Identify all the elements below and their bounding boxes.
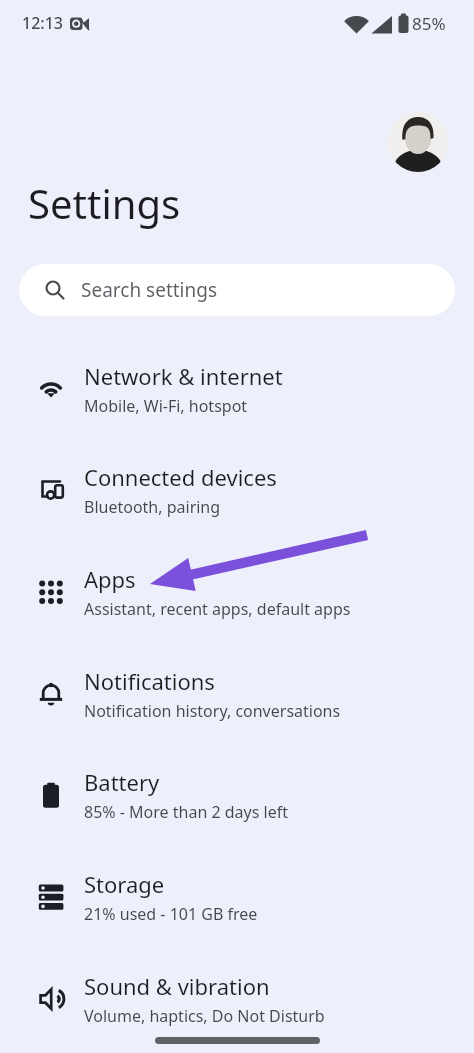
button[interactable]: Apps (0, 541, 474, 643)
staticText: Network & internet (84, 361, 283, 391)
staticText: Sound & vibration (84, 971, 270, 1001)
staticText: Bluetooth, pairing (84, 496, 221, 518)
button[interactable]: Search settings (19, 264, 455, 316)
staticText: Volume, haptics, Do Not Disturb (84, 1005, 325, 1027)
button[interactable]: Sound & vibration (0, 948, 474, 1050)
staticText: Notification history, conversations (84, 700, 341, 722)
button[interactable]: Notifications (0, 643, 474, 745)
staticText: 85% (412, 12, 446, 35)
staticText: Mobile, Wi-Fi, hotspot (84, 395, 248, 417)
button[interactable] (388, 112, 448, 172)
staticText: Battery (84, 767, 160, 797)
button[interactable]: Network & internet (0, 338, 474, 440)
staticText: 21% used - 101 GB free (84, 903, 258, 925)
staticText: 85% - More than 2 days left (84, 801, 288, 823)
staticText: Notifications (84, 666, 215, 696)
staticText: Search settings (81, 277, 218, 303)
staticText: Connected devices (84, 462, 277, 492)
button[interactable]: Connected devices (0, 439, 474, 541)
staticText: Apps (84, 564, 136, 594)
staticText: Assistant, recent apps, default apps (84, 598, 351, 620)
button[interactable]: Storage (0, 846, 474, 948)
staticText: Settings (28, 176, 181, 230)
staticText: 12:13 (22, 12, 63, 34)
staticText: Storage (84, 869, 165, 899)
button[interactable]: Battery (0, 744, 474, 846)
